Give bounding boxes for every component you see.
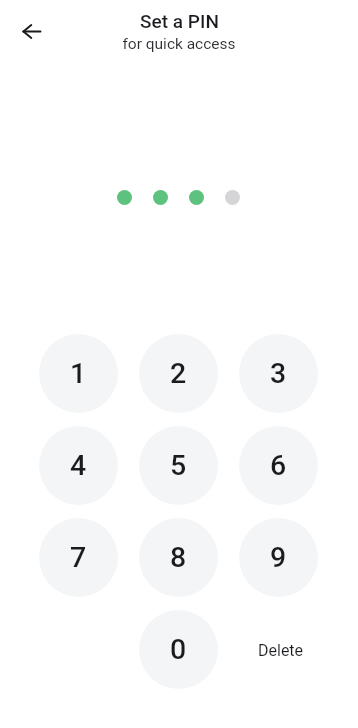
button[interactable]: 3 (239, 334, 318, 413)
button[interactable]: 2 (139, 334, 218, 413)
button[interactable]: 8 (139, 518, 218, 597)
staticText: 7 (70, 541, 87, 574)
staticText: for quick access (122, 35, 236, 53)
button[interactable]: 5 (139, 426, 218, 505)
button[interactable]: 6 (239, 426, 318, 505)
staticText: 1 (70, 357, 87, 390)
staticText: Delete (258, 641, 304, 660)
staticText: 5 (170, 449, 187, 482)
staticText: 6 (270, 449, 287, 482)
staticText: 8 (170, 541, 187, 574)
staticText: 3 (270, 357, 287, 390)
button[interactable]: 1 (39, 334, 118, 413)
staticText: Set a PIN (140, 10, 219, 32)
button[interactable]: 0 (139, 610, 218, 689)
staticText: 4 (70, 449, 87, 482)
staticText: 2 (170, 357, 187, 390)
button[interactable]: 9 (239, 518, 318, 597)
button[interactable]: 7 (39, 518, 118, 597)
staticText: 0 (170, 633, 187, 666)
button[interactable]: Back (12, 11, 52, 51)
button[interactable]: Delete (239, 610, 318, 689)
button[interactable]: 4 (39, 426, 118, 505)
staticText: 9 (270, 541, 287, 574)
